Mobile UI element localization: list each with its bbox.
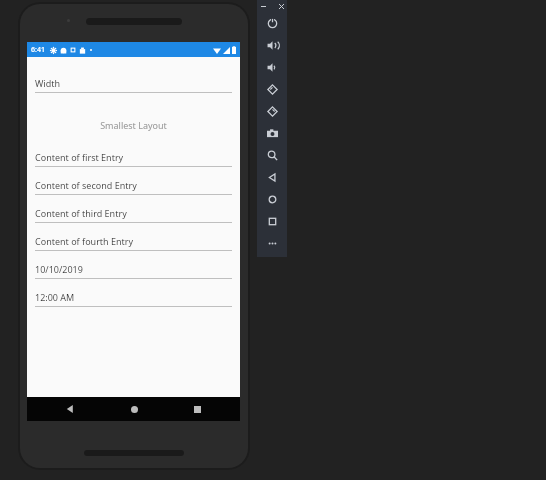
staticText: Content of third Entry xyxy=(35,207,127,219)
button[interactable]: Home xyxy=(114,397,154,421)
staticText: Smallest Layout xyxy=(100,119,167,131)
button[interactable]: Rotate left xyxy=(257,78,287,100)
button[interactable]: Rotate right xyxy=(257,100,287,122)
staticText: 10/10/2019 xyxy=(35,263,83,275)
button[interactable]: 12:00 AM xyxy=(27,291,240,307)
staticText: Width xyxy=(35,77,61,89)
staticText: 12:00 AM xyxy=(35,291,75,303)
button[interactable]: Recent apps xyxy=(177,397,217,421)
button[interactable]: Content of first Entry xyxy=(27,151,240,167)
staticText: Content of second Entry xyxy=(35,179,137,191)
button[interactable]: Volume up xyxy=(257,34,287,56)
button[interactable]: Content of second Entry xyxy=(27,179,240,195)
button[interactable]: More xyxy=(257,232,287,254)
button[interactable]: Back xyxy=(50,397,90,421)
button[interactable]: Power xyxy=(257,12,287,34)
button[interactable]: Content of third Entry xyxy=(27,207,240,223)
button[interactable]: Volume down xyxy=(257,56,287,78)
button[interactable]: Close xyxy=(277,2,286,11)
staticText: Content of first Entry xyxy=(35,151,124,163)
button[interactable]: 10/10/2019 xyxy=(27,263,240,279)
staticText: 6:41 xyxy=(31,45,45,55)
button[interactable]: Back xyxy=(257,166,287,188)
staticText: Content of fourth Entry xyxy=(35,235,134,247)
button[interactable]: Take screenshot xyxy=(257,122,287,144)
button[interactable]: Zoom xyxy=(257,144,287,166)
button[interactable]: Minimize xyxy=(259,2,268,11)
button[interactable]: Home xyxy=(257,188,287,210)
button[interactable]: Overview xyxy=(257,210,287,232)
button[interactable]: Width xyxy=(27,77,240,93)
button[interactable]: Content of fourth Entry xyxy=(27,235,240,251)
